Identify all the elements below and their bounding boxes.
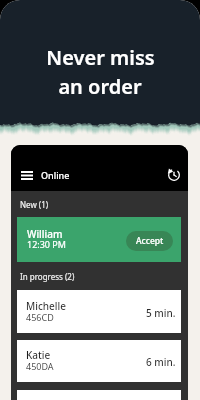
staticText: In progress (2) [20, 271, 75, 282]
staticText: Online [41, 169, 70, 181]
staticText: 5 min. [146, 306, 176, 320]
staticText: William [27, 227, 63, 241]
button[interactable]: History [162, 163, 186, 187]
staticText: Katie [26, 348, 51, 362]
button[interactable]: William [17, 217, 181, 262]
staticText: Accept [136, 235, 164, 247]
button[interactable]: Accept [126, 231, 173, 251]
staticText: 456CD [26, 311, 54, 323]
staticText: Never miss [46, 44, 155, 71]
staticText: 450DA [26, 360, 54, 372]
button[interactable]: Michelle [17, 290, 181, 333]
staticText: 12:30 PM [27, 238, 66, 250]
staticText: 6 min. [146, 355, 176, 369]
button[interactable]: Katie [17, 340, 181, 382]
staticText: New (1) [20, 199, 49, 210]
staticText: an order [58, 73, 142, 100]
button[interactable]: Menu [14, 162, 40, 188]
staticText: Michelle [26, 299, 66, 313]
